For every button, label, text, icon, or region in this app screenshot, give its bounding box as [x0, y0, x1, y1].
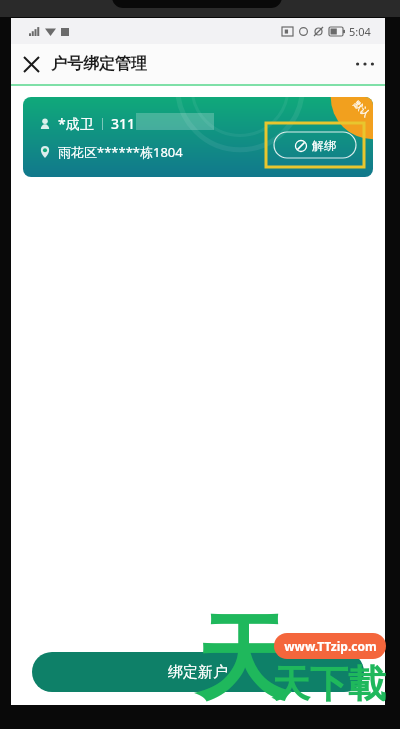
button[interactable]: Close	[11, 44, 51, 84]
staticText: 311	[111, 114, 136, 133]
button[interactable]: 解绑	[266, 123, 364, 167]
staticText: 解绑	[312, 138, 336, 153]
staticText: 绑定新户	[168, 663, 228, 682]
staticText: 5:04	[349, 24, 371, 39]
staticText: www.TTzip.com	[284, 638, 377, 654]
staticText: 户号绑定管理	[51, 54, 147, 74]
staticText: 默认	[352, 98, 372, 119]
staticText: 天	[196, 600, 290, 718]
staticText: 天下載	[272, 660, 386, 708]
button[interactable]: 默认	[23, 97, 373, 177]
staticText: 雨花区******栋1804	[58, 143, 183, 161]
staticText: *成卫	[58, 114, 94, 133]
button[interactable]: More options	[345, 44, 385, 84]
button[interactable]: 绑定新户	[32, 652, 364, 692]
